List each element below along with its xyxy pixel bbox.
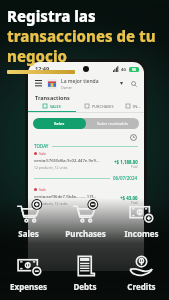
staticText: 12 products, 12 units [34,165,68,170]
staticText: Sales receivable [97,121,129,127]
staticText: +$ 43.00 [120,195,138,201]
staticText: 96 [132,67,137,72]
button[interactable]: Sales [33,118,86,129]
button[interactable]: Sale [28,149,144,172]
staticText: 06/07/2024 [113,175,138,181]
button[interactable]: Sales [0,198,57,241]
staticText: Transactions [35,94,70,101]
button[interactable]: IN… [123,104,144,112]
staticText: Registra las [7,6,96,26]
staticText: +$ 1,188.00 [114,159,138,165]
staticText: negocio [7,46,68,66]
staticText: Debts [73,281,97,292]
staticText: Expenses [10,281,47,292]
staticText: SALES [50,104,61,109]
staticText: 12:49 [35,65,50,72]
staticText: Sale [39,187,47,192]
staticText: PURCHASES [92,104,114,109]
button[interactable]: Menu [33,78,44,89]
button[interactable]: History [129,133,137,141]
button[interactable]: Search [129,79,139,89]
staticText: La mejor tienda [61,78,99,85]
staticText: Sales [18,228,39,239]
button[interactable]: PURCHASES [76,104,123,112]
button[interactable]: SALES [28,104,76,112]
staticText: Purchases [65,228,106,239]
staticText: Paid [131,201,138,205]
staticText: 4G [121,67,127,72]
button[interactable]: Expenses [0,251,57,294]
staticText: Paid [131,165,138,169]
staticText: venta:aef36de7-5b4a-…-…-17f… [34,194,97,200]
button[interactable]: Expand [117,79,126,88]
staticText: Sale [39,151,47,156]
staticText: Incomes [124,228,159,239]
button[interactable]: Credits [113,251,169,294]
button[interactable]: Incomes [113,198,169,241]
staticText: IN… [133,104,141,109]
button[interactable]: Debts [57,251,113,294]
staticText: Credits [127,281,156,292]
staticText: venta:57650d6a-9c02-447e-9e9… [34,158,100,164]
staticText: Sales [54,121,65,127]
staticText: 12 products, 12 units [34,201,68,206]
button[interactable]: Purchases [57,198,113,241]
button[interactable]: Sales receivable [86,118,139,129]
staticText: TODAY [34,143,49,149]
button[interactable]: Sale [28,185,144,208]
staticText: transacciones de tu [7,26,156,46]
staticText: Owner [61,85,73,90]
